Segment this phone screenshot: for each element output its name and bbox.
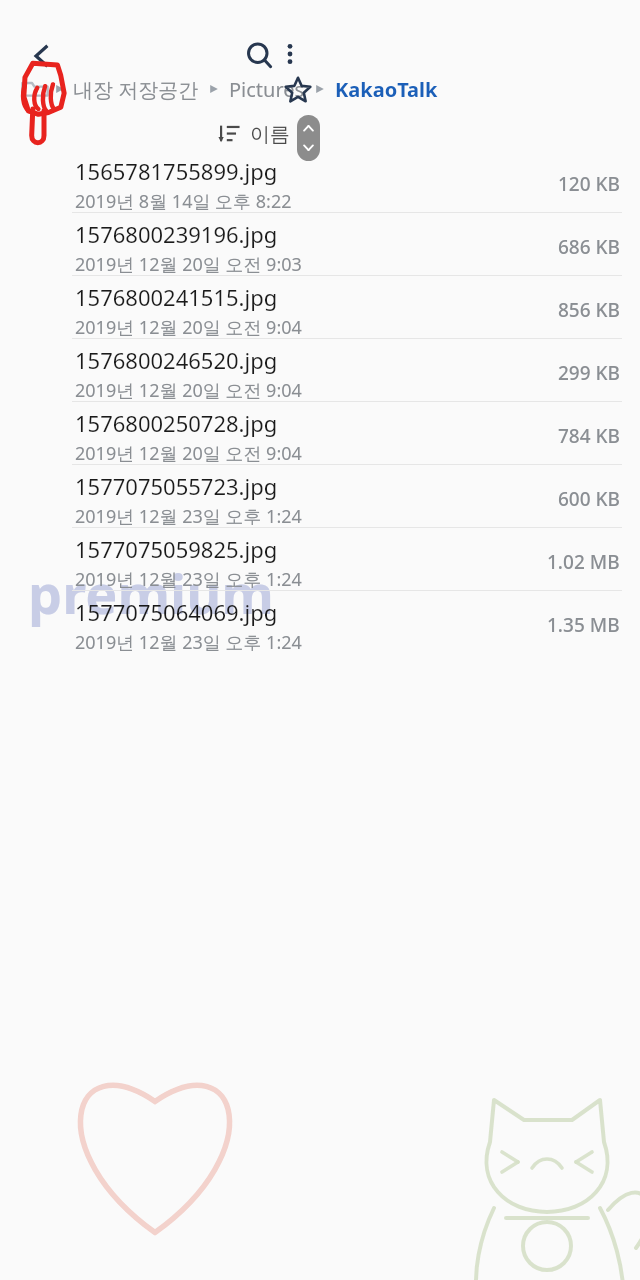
button[interactable]: 1576800250728.jpg <box>0 402 640 465</box>
staticText: 686 KB <box>558 234 620 260</box>
staticText: 856 KB <box>558 297 620 323</box>
button[interactable]: 1565781755899.jpg <box>0 150 640 213</box>
staticText: 2019년 12월 23일 오후 1:24 <box>75 567 302 592</box>
button[interactable]: 1576800241515.jpg <box>0 276 640 339</box>
staticText: 이름 <box>250 122 290 147</box>
staticText: 2019년 12월 20일 오전 9:04 <box>75 315 302 340</box>
staticText: 784 KB <box>558 423 620 449</box>
staticText: KakaoTalk <box>335 76 438 103</box>
button[interactable]: 1576800246520.jpg <box>0 339 640 402</box>
staticText: 2019년 8월 14일 오후 8:22 <box>75 189 292 214</box>
button[interactable]: Ascending order <box>283 112 327 156</box>
button[interactable]: Add to favourites <box>276 68 320 112</box>
staticText: 내장 저장공간 <box>73 76 199 103</box>
button[interactable]: More options <box>264 28 316 80</box>
staticText: 1577075064069.jpg <box>75 597 278 627</box>
staticText: 1576800241515.jpg <box>75 282 278 312</box>
button[interactable]: Scroll <box>297 115 320 161</box>
button[interactable]: 1577075055723.jpg <box>0 465 640 528</box>
button[interactable]: Search <box>232 28 288 84</box>
staticText: 1565781755899.jpg <box>75 156 278 186</box>
button[interactable]: 이름 <box>218 114 290 154</box>
staticText: 1577075055723.jpg <box>75 471 278 501</box>
staticText: 1577075059825.jpg <box>75 534 278 564</box>
button[interactable]: 내장 저장공간 <box>20 68 438 110</box>
staticText: Pictures <box>229 76 305 103</box>
staticText: 299 KB <box>558 360 620 386</box>
staticText: 600 KB <box>558 486 620 512</box>
staticText: 120 KB <box>558 171 620 197</box>
staticText: 1576800246520.jpg <box>75 345 278 375</box>
staticText: 2019년 12월 23일 오후 1:24 <box>75 504 302 529</box>
staticText: 2019년 12월 20일 오전 9:03 <box>75 252 302 277</box>
button[interactable]: 1577075064069.jpg <box>0 591 640 654</box>
button[interactable]: 1576800239196.jpg <box>0 213 640 276</box>
staticText: premium <box>28 556 274 630</box>
staticText: 2019년 12월 20일 오전 9:04 <box>75 441 302 466</box>
staticText: 1576800239196.jpg <box>75 219 278 249</box>
button[interactable]: 1577075059825.jpg <box>0 528 640 591</box>
button[interactable]: Back <box>14 28 70 84</box>
staticText: 1.35 MB <box>547 612 620 638</box>
staticText: 1576800250728.jpg <box>75 408 278 438</box>
staticText: 2019년 12월 23일 오후 1:24 <box>75 630 302 655</box>
staticText: 1.02 MB <box>547 549 620 575</box>
staticText: 2019년 12월 20일 오전 9:04 <box>75 378 302 403</box>
